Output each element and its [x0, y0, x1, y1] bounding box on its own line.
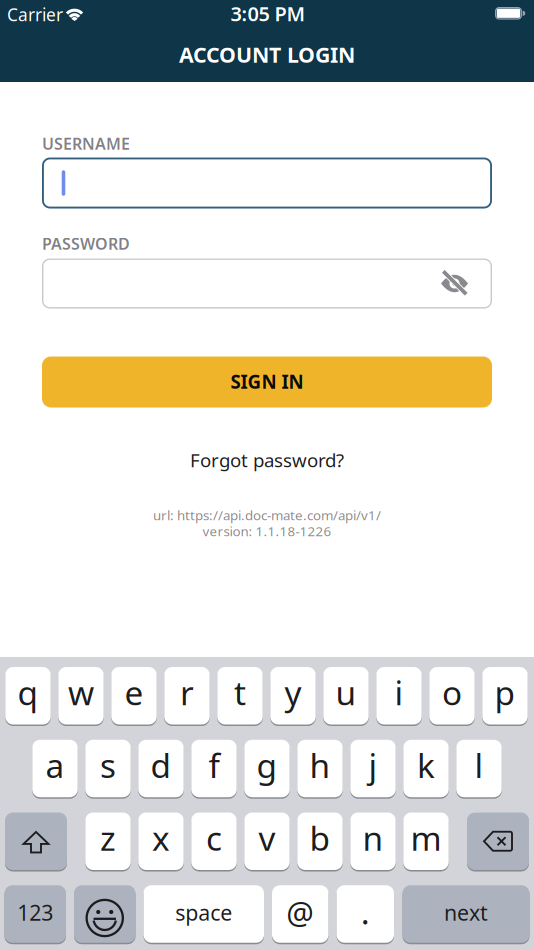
button[interactable]: i	[376, 666, 422, 725]
button[interactable]: c	[191, 811, 237, 871]
button[interactable]: @	[272, 884, 328, 944]
button[interactable]: w	[58, 666, 104, 725]
staticText: SIGN IN	[230, 369, 303, 394]
staticText: r	[180, 670, 194, 714]
staticText: 3:05 PM	[230, 0, 305, 27]
staticText: space	[175, 898, 232, 927]
staticText: x	[152, 816, 170, 860]
staticText: c	[206, 816, 222, 860]
button[interactable]: 123	[4, 884, 66, 944]
staticText: v	[258, 816, 275, 860]
button[interactable]: SIGN IN	[42, 356, 492, 407]
staticText: u	[335, 670, 356, 714]
button[interactable]: q	[5, 666, 51, 725]
staticText: b	[309, 816, 330, 860]
button[interactable]: e	[111, 666, 157, 725]
staticText: p	[494, 670, 515, 714]
button[interactable]: Username	[42, 157, 492, 208]
button[interactable]: Emoji	[74, 884, 135, 944]
button[interactable]: Show password	[432, 263, 476, 303]
button[interactable]: x	[138, 811, 184, 871]
staticText: s	[100, 743, 116, 787]
staticText: 123	[17, 898, 53, 927]
button[interactable]: t	[217, 666, 263, 725]
button[interactable]: Password	[42, 258, 492, 308]
button[interactable]: n	[350, 811, 396, 871]
staticText: j	[368, 743, 377, 787]
button[interactable]: f	[191, 739, 237, 798]
button[interactable]: z	[85, 811, 131, 871]
button[interactable]: j	[350, 739, 396, 798]
staticText: t	[234, 670, 246, 714]
button[interactable]: d	[138, 739, 184, 798]
staticText: m	[410, 816, 441, 860]
button[interactable]: u	[323, 666, 369, 725]
staticText: .	[361, 889, 370, 934]
button[interactable]: a	[32, 739, 78, 798]
staticText: l	[474, 743, 483, 787]
button[interactable]: o	[429, 666, 475, 725]
button[interactable]: l	[456, 739, 502, 798]
button[interactable]: r	[164, 666, 210, 725]
button[interactable]: g	[244, 739, 290, 798]
staticText: n	[362, 816, 383, 860]
staticText: a	[45, 743, 64, 787]
button[interactable]: k	[403, 739, 449, 798]
staticText: z	[100, 816, 116, 860]
staticText: next	[444, 898, 488, 927]
button[interactable]: Delete	[467, 811, 529, 871]
button[interactable]: Shift	[5, 811, 67, 871]
staticText: y	[284, 670, 301, 714]
staticText: @	[286, 892, 314, 932]
staticText: ACCOUNT LOGIN	[179, 40, 355, 69]
staticText: url: https://api.doc-mate.com/api/v1/	[153, 506, 381, 524]
staticText: f	[208, 743, 219, 787]
staticText: e	[124, 670, 143, 714]
staticText: g	[256, 743, 277, 787]
staticText: o	[442, 670, 462, 714]
button[interactable]: next	[402, 884, 529, 944]
staticText: version: 1.1.18-1226	[202, 522, 331, 540]
button[interactable]: space	[143, 884, 264, 944]
button[interactable]: h	[297, 739, 343, 798]
button[interactable]: Forgot password?	[190, 448, 344, 472]
staticText: PASSWORD	[42, 233, 130, 254]
button[interactable]: .	[336, 884, 394, 944]
staticText: w	[68, 670, 94, 714]
staticText: k	[417, 743, 435, 787]
staticText: Forgot password?	[190, 448, 344, 472]
staticText: q	[17, 670, 38, 714]
staticText: Carrier	[7, 3, 63, 26]
staticText: USERNAME	[42, 133, 130, 154]
staticText: h	[309, 743, 330, 787]
staticText: d	[150, 743, 171, 787]
button[interactable]: b	[297, 811, 343, 871]
button[interactable]: p	[482, 666, 528, 725]
button[interactable]: y	[270, 666, 316, 725]
button[interactable]: v	[244, 811, 290, 871]
button[interactable]: m	[403, 811, 449, 871]
button[interactable]: s	[85, 739, 131, 798]
staticText: i	[394, 670, 403, 714]
